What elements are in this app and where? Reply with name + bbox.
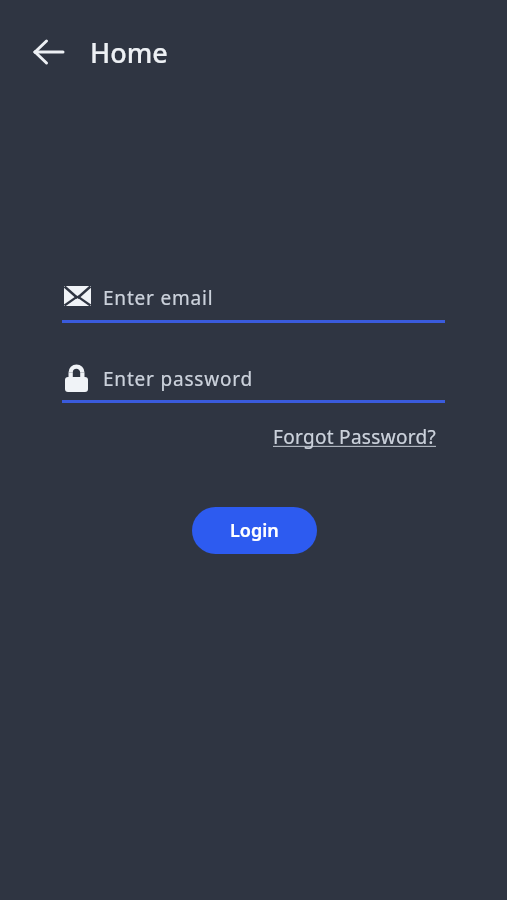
staticText: Enter password [103,366,253,392]
button[interactable]: Login [192,507,317,554]
staticText: Enter email [103,285,214,311]
button[interactable]: Forgot Password? [273,424,436,450]
staticText: Home [90,34,168,71]
button[interactable] [25,28,73,76]
staticText: Login [230,518,279,543]
